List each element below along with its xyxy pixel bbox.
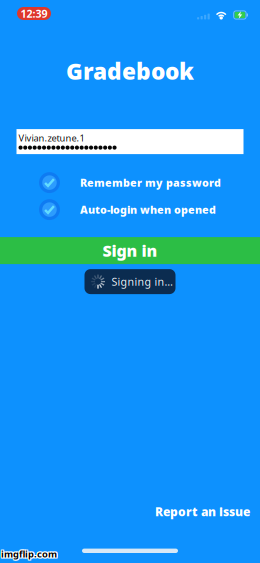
staticText: imgflip.com xyxy=(1,549,57,561)
button[interactable] xyxy=(17,144,242,154)
button[interactable]: Report an issue xyxy=(155,501,260,523)
staticText: imgflip.com xyxy=(0,547,56,559)
staticText: Signing in… xyxy=(111,274,172,289)
staticText: Sign in xyxy=(102,240,157,261)
staticText: Gradebook xyxy=(66,56,194,86)
staticText: Vivian.zetune.1 xyxy=(18,132,84,144)
staticText: 12:39 xyxy=(20,6,47,21)
button[interactable]: Auto-login when opened xyxy=(0,196,260,223)
staticText: imgflip.com xyxy=(2,548,58,560)
staticText: imgflip.com xyxy=(0,548,56,560)
staticText: Remember my password xyxy=(80,175,221,190)
button[interactable]: Vivian.zetune.1 xyxy=(17,129,242,144)
staticText: imgflip.com xyxy=(2,547,58,559)
staticText: imgflip.com xyxy=(2,549,58,561)
staticText: imgflip.com xyxy=(1,548,57,560)
staticText: imgflip.com xyxy=(0,549,56,561)
staticText: imgflip.com xyxy=(1,547,57,559)
button[interactable]: Remember my password xyxy=(0,169,260,196)
staticText: Auto-login when opened xyxy=(80,202,216,217)
button[interactable]: Sign in xyxy=(0,237,260,264)
staticText: Report an issue xyxy=(155,504,250,520)
